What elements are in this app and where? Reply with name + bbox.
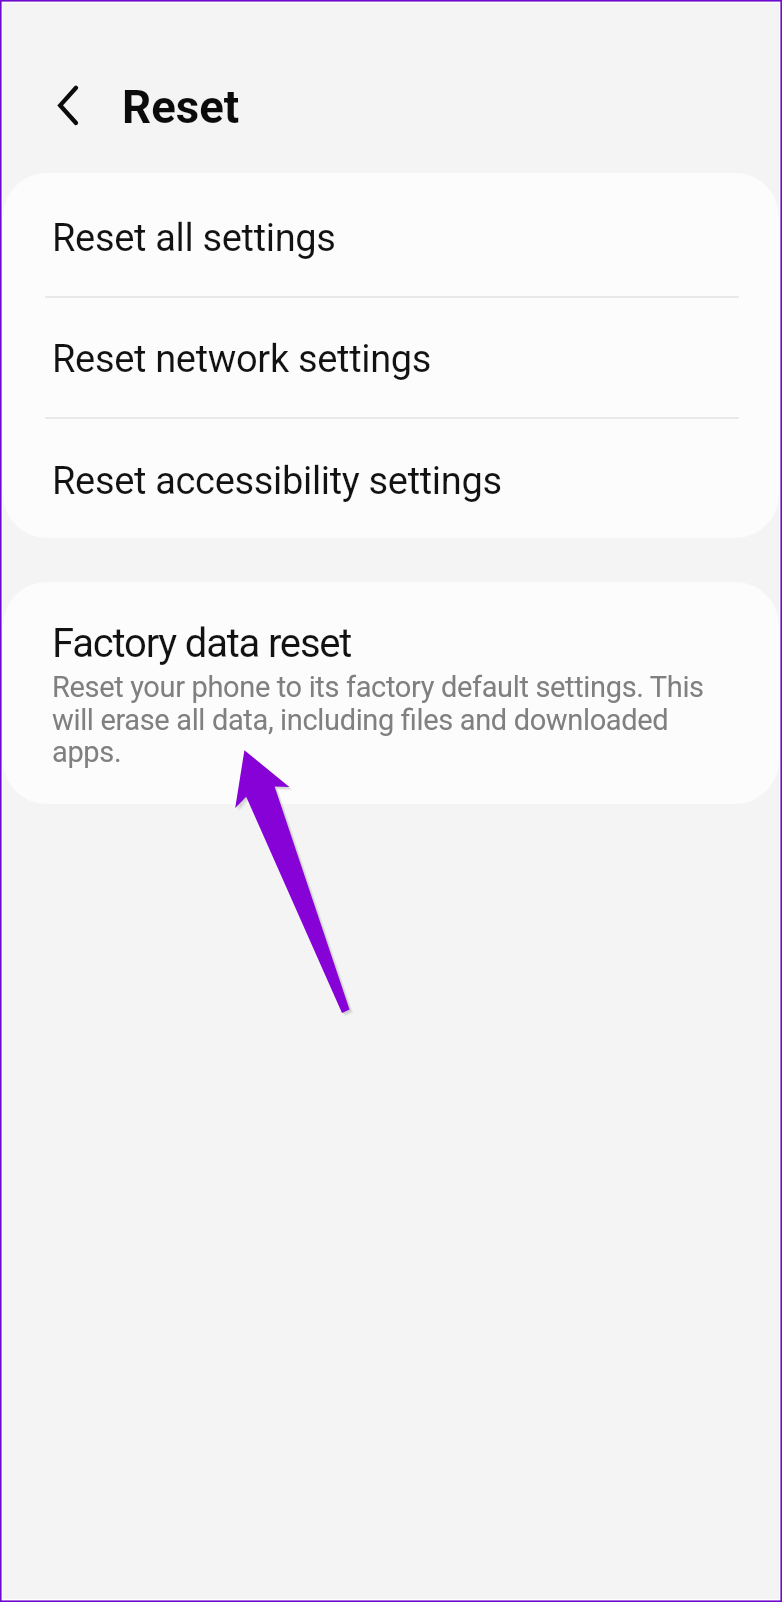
staticText: Reset — [122, 81, 240, 134]
staticText: Reset accessibility settings — [52, 459, 502, 504]
staticText: Reset your phone to its factory default … — [52, 670, 720, 769]
button[interactable]: Reset accessibility settings — [3, 419, 779, 538]
staticText: Reset network settings — [52, 337, 432, 382]
staticText: Reset all settings — [52, 216, 336, 261]
button[interactable]: Navigate up — [25, 39, 93, 107]
button[interactable]: Reset all settings — [3, 173, 779, 296]
button[interactable]: Reset network settings — [3, 298, 779, 417]
button[interactable]: Factory data reset — [3, 582, 779, 804]
staticText: Factory data reset — [52, 620, 352, 667]
